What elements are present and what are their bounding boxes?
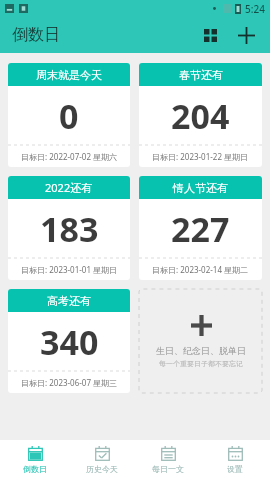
staticText: 5:24: [245, 2, 265, 16]
button[interactable]: 2022还有: [8, 176, 130, 280]
staticText: 目标日: 2023-02-14 星期二: [152, 264, 249, 275]
staticText: 227: [171, 206, 230, 252]
staticText: 高考还有: [47, 294, 91, 308]
button[interactable]: 周末就是今天: [8, 63, 130, 167]
button[interactable]: 高考还有: [8, 289, 130, 393]
staticText: 目标日: 2023-01-22 星期日: [152, 151, 249, 162]
button[interactable]: 每日一文: [137, 440, 199, 480]
button[interactable]: 历史今天: [71, 440, 133, 480]
button[interactable]: 设置: [204, 440, 266, 480]
staticText: 340: [40, 319, 99, 365]
staticText: 183: [40, 206, 99, 252]
staticText: 目标日: 2022-07-02 星期六: [21, 151, 118, 162]
staticText: 0: [59, 93, 79, 139]
staticText: 周末就是今天: [36, 68, 102, 82]
staticText: 每日一文: [152, 464, 184, 474]
staticText: 历史今天: [86, 464, 118, 474]
button[interactable]: 添加: [230, 19, 262, 51]
staticText: 目标日: 2023-06-07 星期三: [21, 377, 118, 388]
staticText: 倒数日: [23, 464, 47, 474]
staticText: 目标日: 2023-01-01 星期日: [21, 264, 118, 275]
button[interactable]: 倒数日: [4, 440, 66, 480]
button[interactable]: 春节还有: [139, 63, 262, 167]
button[interactable]: 添加倒数日: [139, 289, 262, 393]
staticText: 设置: [227, 464, 243, 474]
staticText: 生日、纪念日、脱单日: [156, 345, 246, 356]
staticText: 春节还有: [179, 68, 223, 82]
staticText: 2022还有: [45, 180, 93, 195]
staticText: 倒数日: [12, 25, 60, 45]
button[interactable]: 情人节还有: [139, 176, 262, 280]
staticText: 每一个重要日子都不要忘记: [159, 359, 243, 368]
staticText: 204: [171, 93, 230, 139]
staticText: 情人节还有: [173, 181, 228, 195]
button[interactable]: 网格视图: [194, 19, 226, 51]
